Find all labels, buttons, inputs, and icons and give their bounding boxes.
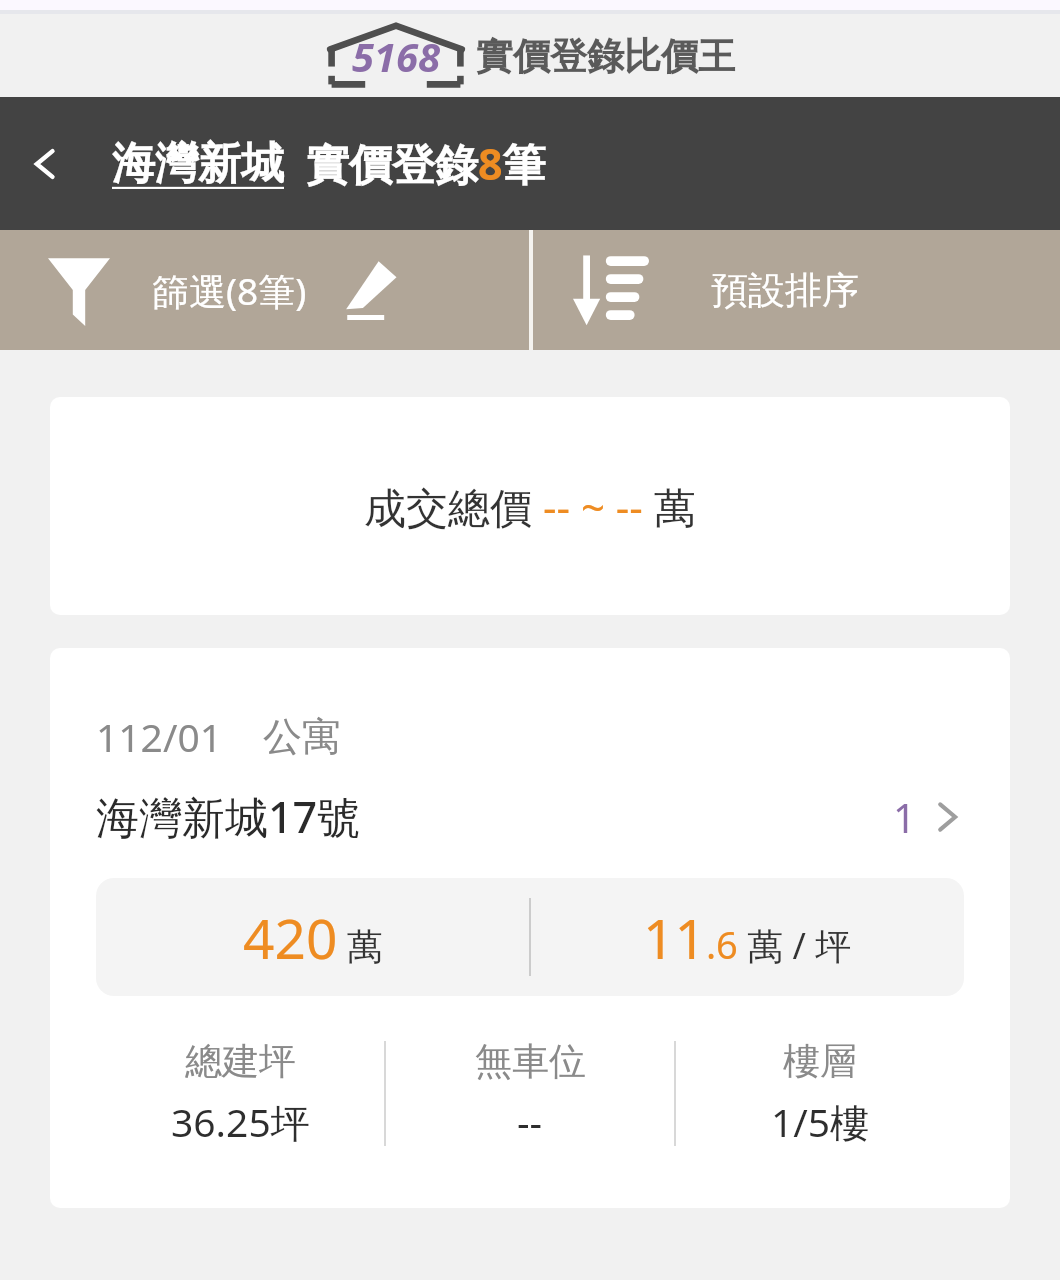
staticText: --	[517, 1095, 543, 1148]
staticText: 1/5樓	[771, 1095, 870, 1148]
button[interactable]: Back	[0, 109, 90, 219]
staticText: 實價登錄8筆	[306, 134, 546, 193]
staticText: 36.25坪	[171, 1095, 310, 1148]
staticText: 420 萬	[243, 900, 383, 975]
staticText: 11.6 萬 / 坪	[643, 900, 852, 975]
staticText: 預設排序	[711, 267, 859, 314]
staticText: 5168	[352, 29, 441, 83]
staticText: 無車位	[475, 1038, 586, 1085]
button[interactable]: 海灣新城	[112, 134, 546, 193]
button[interactable]: 112/01	[50, 648, 1010, 1208]
button[interactable]: Filter	[0, 230, 529, 350]
staticText: 海灣新城	[112, 137, 284, 191]
staticText: 總建坪	[185, 1038, 296, 1085]
staticText: 篩選(8筆)	[152, 265, 307, 316]
staticText: 樓層	[783, 1038, 857, 1085]
staticText: 公寓	[263, 712, 341, 761]
other: Filter	[48, 254, 110, 326]
staticText: 1	[893, 790, 916, 844]
other: Edit	[345, 258, 401, 322]
other: Sort	[569, 254, 649, 326]
staticText: 海灣新城17號	[96, 787, 361, 846]
staticText: 實價登錄比價王	[476, 33, 735, 80]
button[interactable]: Sort	[533, 230, 1060, 350]
staticText: 成交總價 -- ~ -- 萬	[364, 478, 696, 535]
button[interactable]: 成交總價 -- ~ -- 萬	[50, 397, 1010, 615]
staticText: 112/01	[96, 710, 223, 763]
